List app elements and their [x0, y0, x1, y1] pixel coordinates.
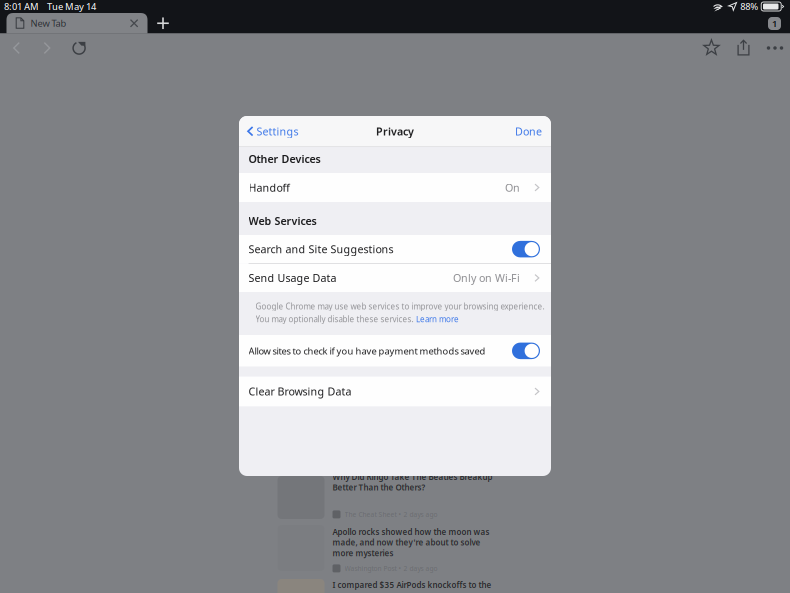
staticText: Google Chrome may use web services to im…: [255, 301, 544, 312]
button[interactable]: Settings: [239, 116, 304, 146]
button[interactable]: Handoff: [239, 173, 551, 202]
button[interactable]: New tab: [148, 13, 178, 33]
button[interactable]: More options: [759, 33, 790, 62]
button[interactable]: Allow sites to check if you have payment…: [239, 335, 551, 367]
staticText: Done: [515, 124, 542, 138]
staticText: 1: [772, 17, 777, 30]
staticText: Allow sites to check if you have payment…: [249, 345, 486, 357]
staticText: Clear Browsing Data: [249, 384, 352, 399]
staticText: I compared $35 AirPods knockoffs to the: [332, 579, 491, 590]
button[interactable]: Tabs: [768, 17, 781, 30]
staticText: You may optionally disable these service…: [255, 314, 413, 324]
staticText: Privacy: [376, 124, 414, 138]
staticText: New Tab: [30, 17, 66, 29]
button[interactable]: Reload: [64, 33, 94, 62]
staticText: Only on Wi-Fi: [453, 271, 520, 285]
staticText: Washington Post • 2 days ago: [344, 564, 437, 573]
button[interactable]: Search and Site Suggestions: [239, 235, 551, 263]
staticText: Web Services: [249, 214, 317, 228]
staticText: 8:01 AM: [4, 0, 39, 13]
button[interactable]: Back: [1, 33, 31, 62]
staticText: On: [505, 180, 520, 195]
staticText: Other Devices: [249, 152, 321, 166]
staticText: Why Did Ringo Take The Beatles Breakup B…: [332, 471, 492, 493]
button[interactable]: Done: [509, 116, 551, 146]
staticText: Send Usage Data: [249, 271, 337, 285]
button[interactable]: New Tab: [6, 13, 147, 33]
button[interactable]: Forward: [32, 33, 62, 62]
staticText: Search and Site Suggestions: [249, 242, 394, 256]
button[interactable]: Bookmark: [695, 33, 727, 62]
staticText: Learn more: [416, 314, 459, 324]
staticText: Tue May 14: [47, 0, 96, 13]
staticText: Settings: [256, 124, 298, 138]
button[interactable]: Share: [727, 33, 759, 62]
staticText: 88%: [740, 0, 758, 13]
staticText: Handoff: [249, 180, 290, 195]
staticText: The Cheat Sheet • 2 days ago: [344, 510, 437, 519]
button[interactable]: Clear Browsing Data: [239, 377, 551, 406]
staticText: Apollo rocks showed how the moon was mad…: [332, 526, 489, 558]
button[interactable]: Send Usage Data: [239, 264, 551, 292]
